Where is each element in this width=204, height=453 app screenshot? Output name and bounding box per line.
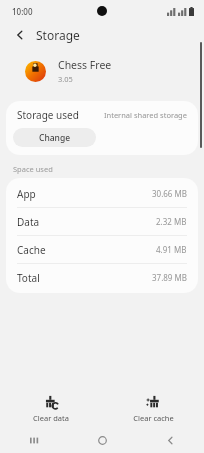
button[interactable]: Recents (0, 427, 68, 453)
button[interactable]: Data (6, 208, 198, 236)
staticText: 30.66 MB (152, 188, 187, 199)
staticText: 3.05 (58, 74, 73, 84)
staticText: App (17, 187, 36, 201)
staticText: Data (17, 215, 40, 229)
staticText: 37.89 MB (152, 272, 187, 283)
staticText: Storage (36, 27, 80, 43)
staticText: Chess Free (58, 58, 112, 72)
button[interactable]: Back (11, 26, 29, 44)
staticText: Clear data (33, 413, 69, 423)
staticText: Internal shared storage (104, 110, 187, 120)
staticText: Total (17, 271, 40, 285)
staticText: Change (39, 132, 71, 144)
button[interactable]: Change (13, 128, 96, 147)
staticText: 4.91 MB (156, 244, 187, 255)
button[interactable]: Clear cache (102, 392, 204, 426)
button[interactable]: Cache (6, 236, 198, 264)
staticText: Cache (17, 243, 46, 257)
button[interactable]: Back (136, 427, 204, 453)
staticText: Clear cache (133, 413, 174, 423)
button[interactable]: Home (68, 427, 136, 453)
button[interactable]: Total (6, 264, 198, 291)
staticText: 2.32 MB (156, 216, 187, 227)
staticText: Storage used (17, 108, 79, 122)
button[interactable]: App (6, 180, 198, 208)
staticText: 10:00 (12, 6, 33, 17)
button[interactable]: Clear data (0, 392, 102, 426)
staticText: Space used (13, 164, 53, 174)
